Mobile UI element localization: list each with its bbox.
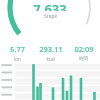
button[interactable]: 293.11: [34, 44, 67, 61]
button[interactable]: 02:09: [67, 44, 100, 61]
button[interactable]: Weekly step chart: [0, 62, 100, 100]
staticText: 02:09: [74, 44, 94, 54]
staticText: 293.11: [39, 44, 63, 54]
staticText: Steps: [44, 13, 57, 20]
staticText: kcal: [46, 56, 55, 61]
button[interactable]: Steps progress ring: [0, 0, 100, 62]
staticText: km: [14, 56, 21, 61]
button[interactable]: 5.77: [0, 44, 34, 61]
staticText: 時間: [79, 56, 88, 61]
staticText: 7,633: [33, 0, 67, 11]
staticText: 5.77: [10, 44, 25, 54]
